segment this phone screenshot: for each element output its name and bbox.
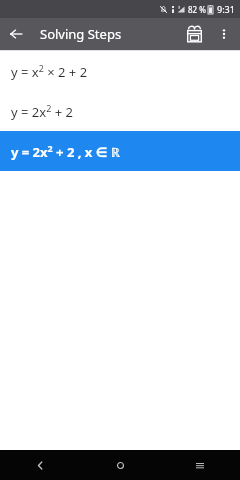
button[interactable]: Home (80, 450, 160, 480)
button[interactable]: y = x2 × 2 + 2 (0, 51, 240, 91)
button[interactable]: y = 2x2 + 2 (0, 91, 240, 131)
button[interactable]: Back (0, 18, 32, 50)
staticText: y = 2x2 + 2 (11, 102, 73, 121)
button[interactable]: y = 2x2 + 2 , x ∈ ℝ (0, 131, 240, 171)
staticText: Solving Steps (40, 25, 122, 43)
button[interactable]: Recent apps (160, 450, 240, 480)
staticText: 9:31 (217, 3, 235, 15)
button[interactable]: Back (0, 450, 80, 480)
button[interactable]: Watch ad for reward (178, 18, 210, 50)
button[interactable]: More options (210, 20, 238, 48)
staticText: y = x2 × 2 + 2 (11, 62, 88, 81)
staticText: 82 % (188, 4, 206, 15)
staticText: y = 2x2 + 2 , x ∈ ℝ (11, 142, 121, 161)
